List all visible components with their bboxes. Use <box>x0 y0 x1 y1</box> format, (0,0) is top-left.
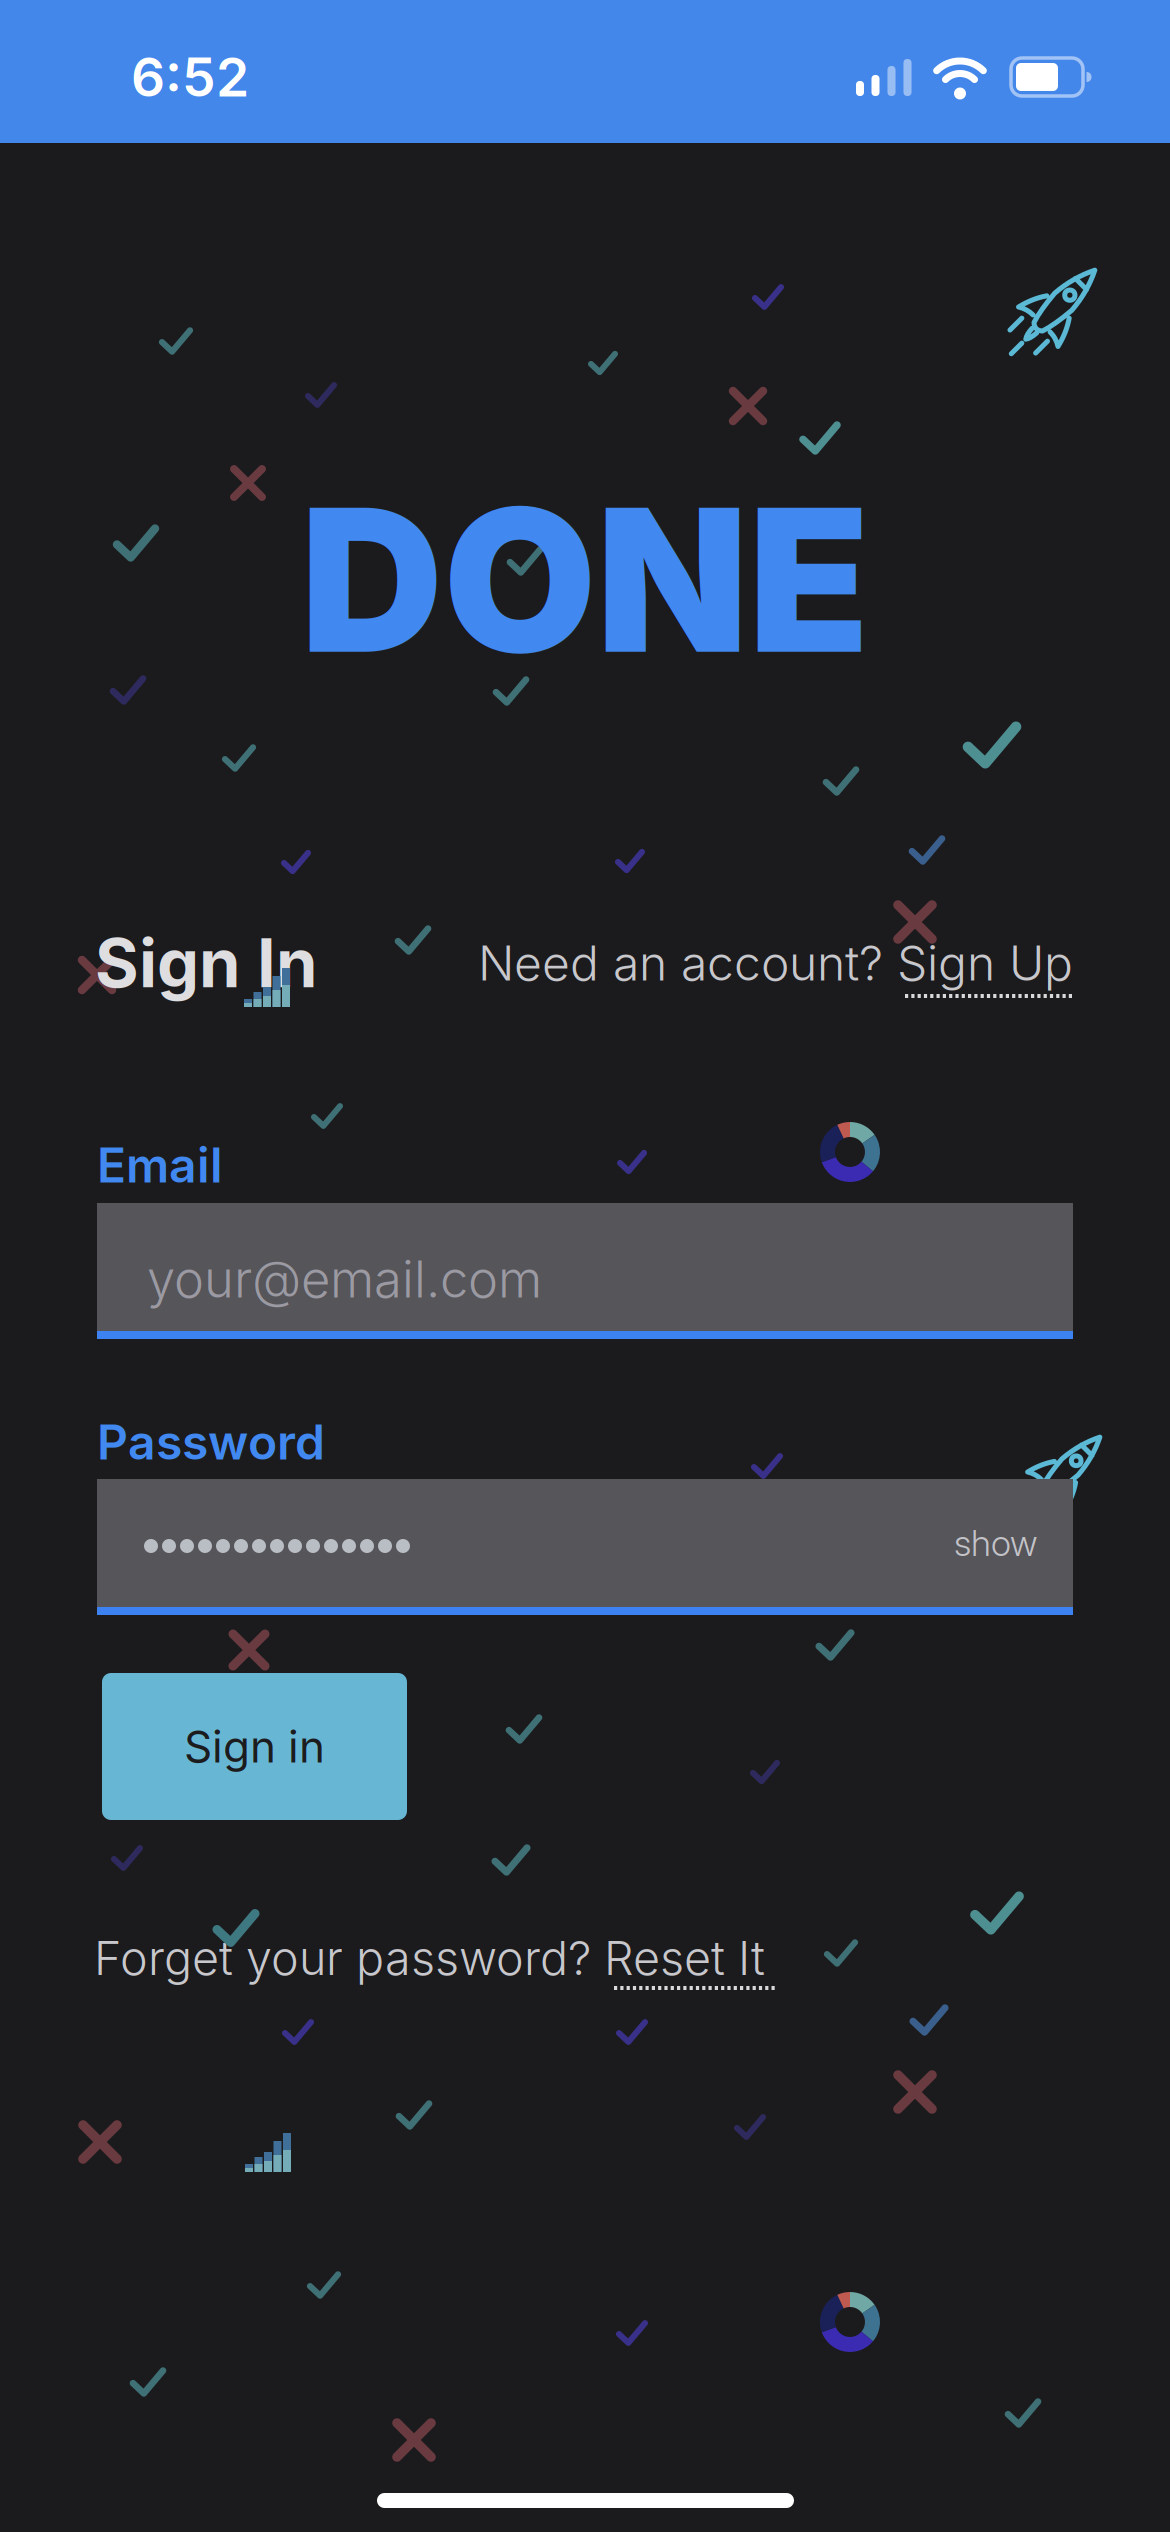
button[interactable]: Sign Up <box>897 934 1073 992</box>
staticText: Sign In <box>95 923 318 1003</box>
staticText: your@email.com <box>147 1248 542 1310</box>
staticText: Sign Up <box>897 934 1073 992</box>
staticText: show <box>954 1521 1037 1565</box>
staticText: Reset It <box>604 1930 765 1986</box>
button[interactable]: Email <box>97 1203 1073 1339</box>
button[interactable]: show <box>954 1521 1037 1565</box>
button[interactable]: Sign in <box>102 1673 407 1820</box>
button[interactable]: Reset It <box>604 1930 765 1986</box>
button[interactable]: Password <box>97 1479 1073 1615</box>
staticText: Email <box>97 1136 223 1194</box>
staticText: Need an account? <box>478 934 897 992</box>
staticText: Forget your password? <box>94 1930 604 1986</box>
staticText: 6:52 <box>131 45 249 109</box>
staticText: Password <box>97 1413 325 1471</box>
staticText: Sign in <box>184 1720 325 1773</box>
staticText: DONE <box>300 461 869 699</box>
